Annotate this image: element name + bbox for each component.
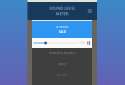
button[interactable]: EXPORT — [32, 72, 92, 77]
button[interactable]: NOISE LEVEL STATISTICS — [32, 50, 92, 55]
button[interactable]: SOUND LEVEL — [27, 2, 97, 20]
staticText: NOISE LEVEL STATISTICS — [48, 51, 75, 54]
staticText: 54.0 — [58, 29, 65, 34]
staticText: METER — [56, 11, 69, 16]
staticText: EXPORT — [57, 73, 67, 76]
staticText: 100 — [79, 41, 85, 45]
button[interactable]: SHARE — [32, 62, 92, 67]
button[interactable]: Pause — [87, 38, 91, 48]
staticText: AVERAGE — [56, 25, 68, 28]
staticText: SOUND LEVEL — [49, 6, 75, 11]
staticText: SHARE — [58, 62, 66, 66]
